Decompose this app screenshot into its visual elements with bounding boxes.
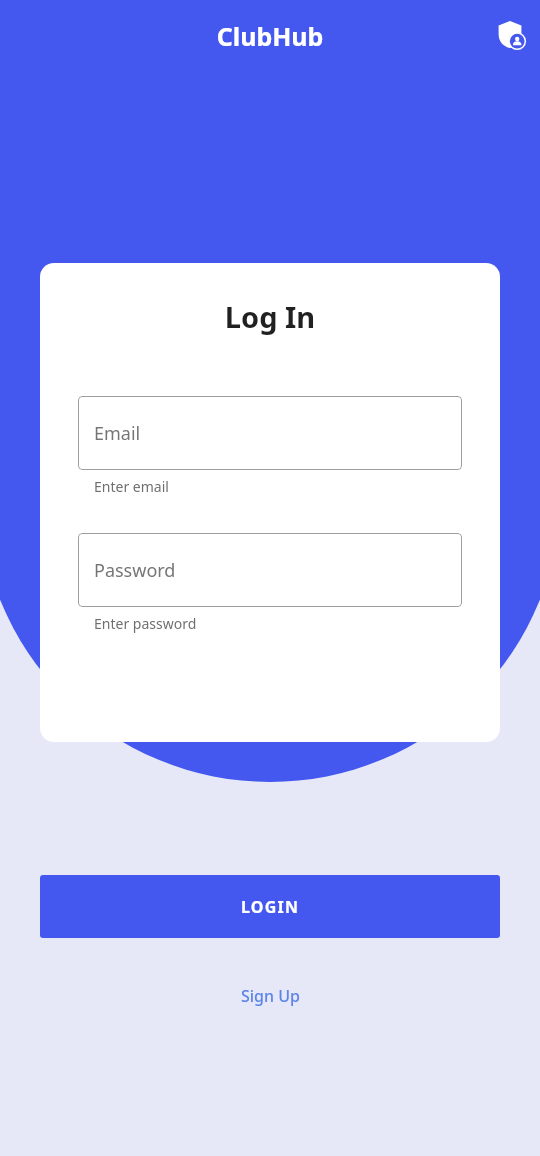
staticText: Log In — [40, 297, 500, 336]
button[interactable]: Password — [78, 533, 462, 607]
staticText: LOGIN — [241, 896, 300, 918]
staticText: Sign Up — [241, 985, 300, 1007]
staticText: Email — [94, 421, 141, 446]
button[interactable]: LOGIN — [40, 875, 500, 938]
staticText: Enter password — [94, 614, 197, 633]
button[interactable]: Admin privacy settings — [492, 16, 528, 52]
staticText: ClubHub — [0, 19, 540, 53]
staticText: Enter email — [94, 477, 169, 496]
button[interactable]: Sign Up — [227, 979, 314, 1013]
staticText: Password — [94, 558, 176, 583]
button[interactable]: Email — [78, 396, 462, 470]
